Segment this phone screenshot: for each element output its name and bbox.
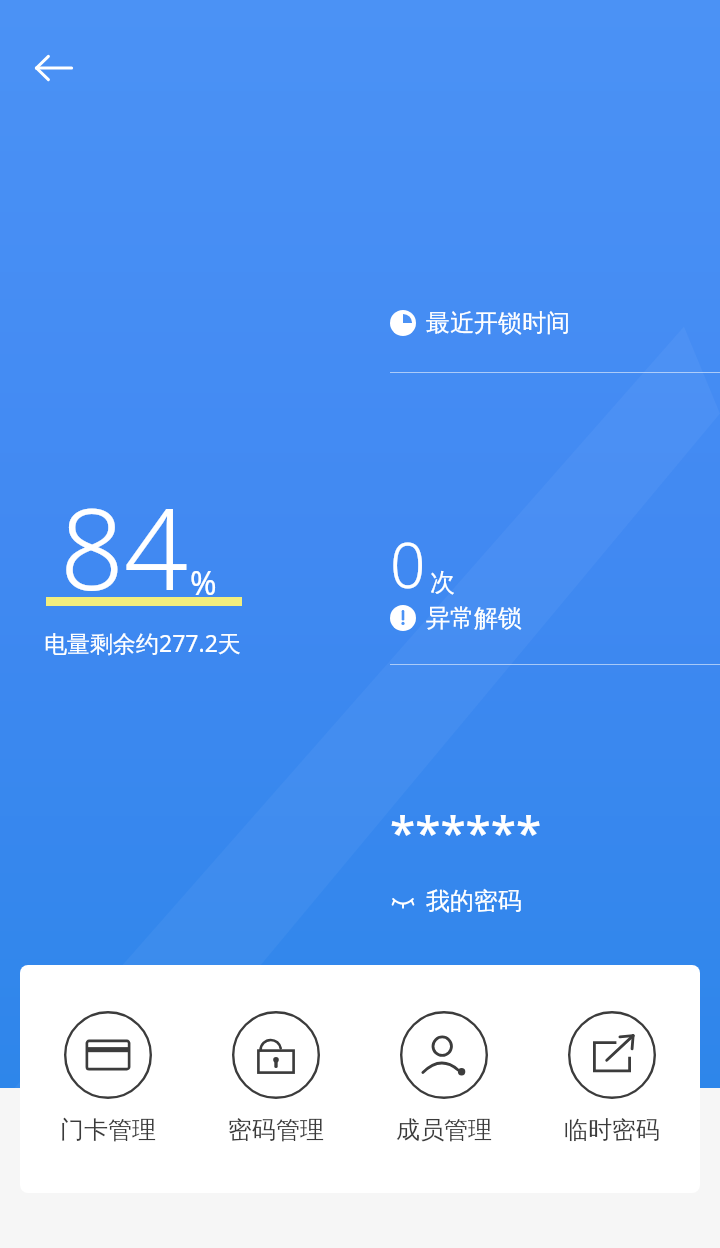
- staticText: 密码管理: [228, 1115, 324, 1145]
- staticText: ******: [390, 800, 542, 863]
- button[interactable]: 成员管理: [364, 965, 524, 1193]
- button[interactable]: 我的密码: [390, 886, 522, 916]
- button[interactable]: 临时密码: [532, 965, 692, 1193]
- staticText: 84: [60, 470, 188, 623]
- staticText: 临时密码: [564, 1115, 660, 1145]
- staticText: 最近开锁时间: [426, 308, 570, 338]
- staticText: 成员管理: [396, 1115, 492, 1145]
- staticText: 异常解锁: [426, 603, 522, 633]
- staticText: 门卡管理: [60, 1115, 156, 1145]
- staticText: 次: [430, 567, 455, 598]
- staticText: %: [190, 561, 217, 605]
- staticText: 电量剩余约277.2天: [44, 627, 241, 658]
- button[interactable]: 门卡管理: [28, 965, 188, 1193]
- button[interactable]: 密码管理: [196, 965, 356, 1193]
- staticText: 0: [390, 522, 426, 606]
- staticText: 我的密码: [426, 886, 522, 916]
- button[interactable]: Back: [24, 38, 84, 98]
